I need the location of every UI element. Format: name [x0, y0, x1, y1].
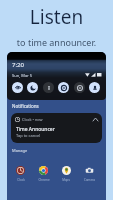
staticText: Chrome	[38, 178, 50, 182]
staticText: Camera	[84, 178, 95, 182]
staticText: Notifications	[12, 103, 39, 109]
staticText: Listen	[0, 4, 113, 30]
staticText: Time Announcer	[16, 126, 55, 133]
staticText: Clock • now	[22, 117, 43, 122]
button[interactable]: Quick setting	[89, 82, 100, 93]
button[interactable]: Quick setting	[12, 82, 23, 93]
staticText: Tap to cancel	[16, 133, 41, 138]
button[interactable]: Chrome	[39, 166, 48, 175]
button[interactable]: Quick setting	[43, 82, 54, 93]
button[interactable]: Maps	[62, 166, 71, 175]
staticText: Maps	[62, 178, 70, 182]
button[interactable]: Clock	[16, 166, 25, 175]
button[interactable]: Clock • now	[11, 113, 102, 143]
staticText: Manage	[12, 148, 28, 153]
button[interactable]: Quick setting	[58, 82, 69, 93]
button[interactable]: Camera	[85, 166, 94, 175]
button[interactable]: Quick setting	[27, 82, 38, 93]
staticText: 7:20	[12, 61, 24, 69]
staticText: to time announcer.	[0, 36, 113, 48]
staticText: Sun, Mar 5	[12, 73, 33, 78]
button[interactable]: Quick setting	[74, 82, 85, 93]
staticText: Clock	[17, 178, 25, 182]
